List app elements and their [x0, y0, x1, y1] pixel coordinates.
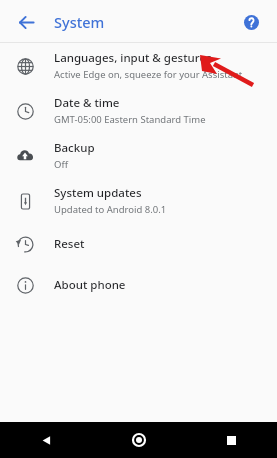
button[interactable]: Recent apps	[185, 422, 277, 458]
button[interactable]: About phone	[0, 264, 277, 305]
button[interactable]: Date & time	[0, 88, 277, 133]
staticText: Updated to Android 8.0.1	[54, 203, 167, 216]
staticText: Backup	[54, 140, 95, 156]
staticText: GMT-05:00 Eastern Standard Time	[54, 113, 206, 126]
staticText: System	[54, 12, 105, 32]
button[interactable]: Reset	[0, 223, 277, 264]
button[interactable]: Languages, input & gestures	[0, 43, 277, 88]
button[interactable]: Help	[235, 6, 267, 38]
button[interactable]: Backup	[0, 133, 277, 178]
staticText: Active Edge on, squeeze for your Assista…	[54, 68, 243, 81]
button[interactable]: Back	[9, 5, 43, 39]
staticText: Date & time	[54, 95, 120, 111]
button[interactable]: System updates	[0, 178, 277, 223]
staticText: Reset	[54, 236, 85, 252]
button[interactable]: Back	[0, 422, 93, 458]
staticText: About phone	[54, 277, 126, 293]
staticText: Languages, input & gestures	[54, 50, 212, 66]
staticText: System updates	[54, 185, 142, 201]
staticText: Off	[54, 158, 68, 171]
button[interactable]: Home	[93, 422, 185, 458]
